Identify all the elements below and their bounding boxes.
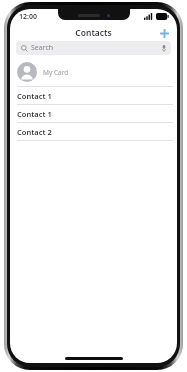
- staticText: Contact 1: [17, 109, 52, 119]
- button[interactable]: Add contact: [156, 25, 172, 41]
- button[interactable]: Contact 1: [10, 105, 177, 123]
- staticText: My Card: [43, 68, 69, 77]
- button[interactable]: Search: [16, 41, 171, 55]
- button[interactable]: Contact 2: [10, 123, 177, 141]
- staticText: Contact 2: [17, 127, 52, 137]
- other: Voice search: [162, 45, 166, 52]
- staticText: Contact 1: [17, 91, 52, 101]
- button[interactable]: Contact 1: [10, 87, 177, 105]
- staticText: 12:00: [19, 12, 37, 22]
- button[interactable]: My Card: [10, 58, 177, 87]
- staticText: Search: [31, 43, 54, 53]
- staticText: Contacts: [75, 27, 112, 39]
